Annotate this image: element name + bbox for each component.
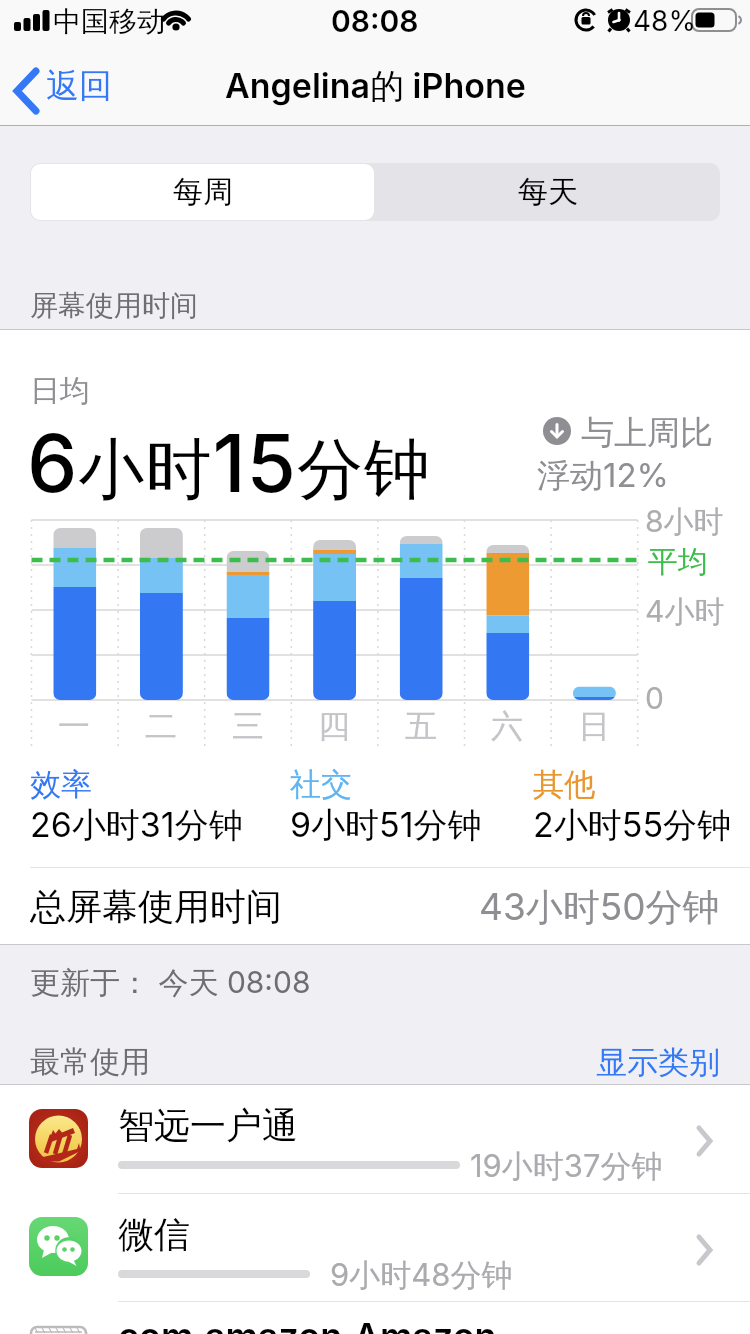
staticText: 与上周比 xyxy=(581,412,713,448)
staticText: 六 xyxy=(491,706,523,742)
staticText: 微信 xyxy=(118,1212,190,1252)
staticText: 6小时15分钟 xyxy=(27,414,432,506)
staticText: 每周 xyxy=(173,173,233,211)
staticText: 每天 xyxy=(518,173,578,211)
staticText: 日 xyxy=(578,706,610,742)
button[interactable] xyxy=(31,164,374,220)
staticText: 19小时37分钟 xyxy=(470,1147,663,1183)
staticText: 48% xyxy=(633,4,693,38)
staticText: 一 xyxy=(58,706,90,742)
staticText: 4小时 xyxy=(645,593,725,627)
button[interactable] xyxy=(375,163,720,221)
staticText: Angelina的 iPhone xyxy=(225,65,526,108)
staticText: 其他 xyxy=(533,765,595,801)
staticText: 四 xyxy=(318,706,350,742)
staticText: 中国移动 xyxy=(53,4,165,38)
staticText: 26小时31分钟 xyxy=(30,804,243,844)
staticText: 08:08 xyxy=(331,3,419,37)
staticText: 43小时50分钟 xyxy=(479,884,720,928)
staticText: 平均 xyxy=(648,543,708,577)
staticText: 更新于： 今天 08:08 xyxy=(30,964,311,1000)
staticText: 显示类别 xyxy=(596,1043,720,1079)
staticText: 8小时 xyxy=(645,503,724,537)
button[interactable]: com.amazon.Amazon xyxy=(0,1302,750,1334)
staticText: 总屏幕使用时间 xyxy=(30,884,282,928)
staticText: 智远一户通 xyxy=(118,1103,298,1143)
button[interactable]: 显示类别 xyxy=(560,1036,730,1084)
staticText: 五 xyxy=(405,706,437,742)
staticText: 社交 xyxy=(290,765,352,801)
staticText: 日均 xyxy=(30,372,90,408)
staticText: 最常使用 xyxy=(30,1043,150,1079)
staticText: 返回 xyxy=(46,65,112,107)
staticText: 9小时48分钟 xyxy=(330,1256,513,1292)
staticText: 9小时51分钟 xyxy=(290,804,482,844)
staticText: 浮动12% xyxy=(537,455,669,491)
button[interactable]: 微信 xyxy=(0,1194,750,1302)
staticText: com.amazon.Amazon xyxy=(118,1314,497,1334)
staticText: 效率 xyxy=(30,765,92,801)
button[interactable]: 智远一户通 xyxy=(0,1085,750,1193)
staticText: 0 xyxy=(645,680,664,714)
staticText: 2小时55分钟 xyxy=(533,804,732,844)
button[interactable]: 返回 xyxy=(10,60,140,120)
staticText: 二 xyxy=(145,706,177,742)
staticText: 三 xyxy=(232,706,264,742)
staticText: 屏幕使用时间 xyxy=(30,288,198,322)
